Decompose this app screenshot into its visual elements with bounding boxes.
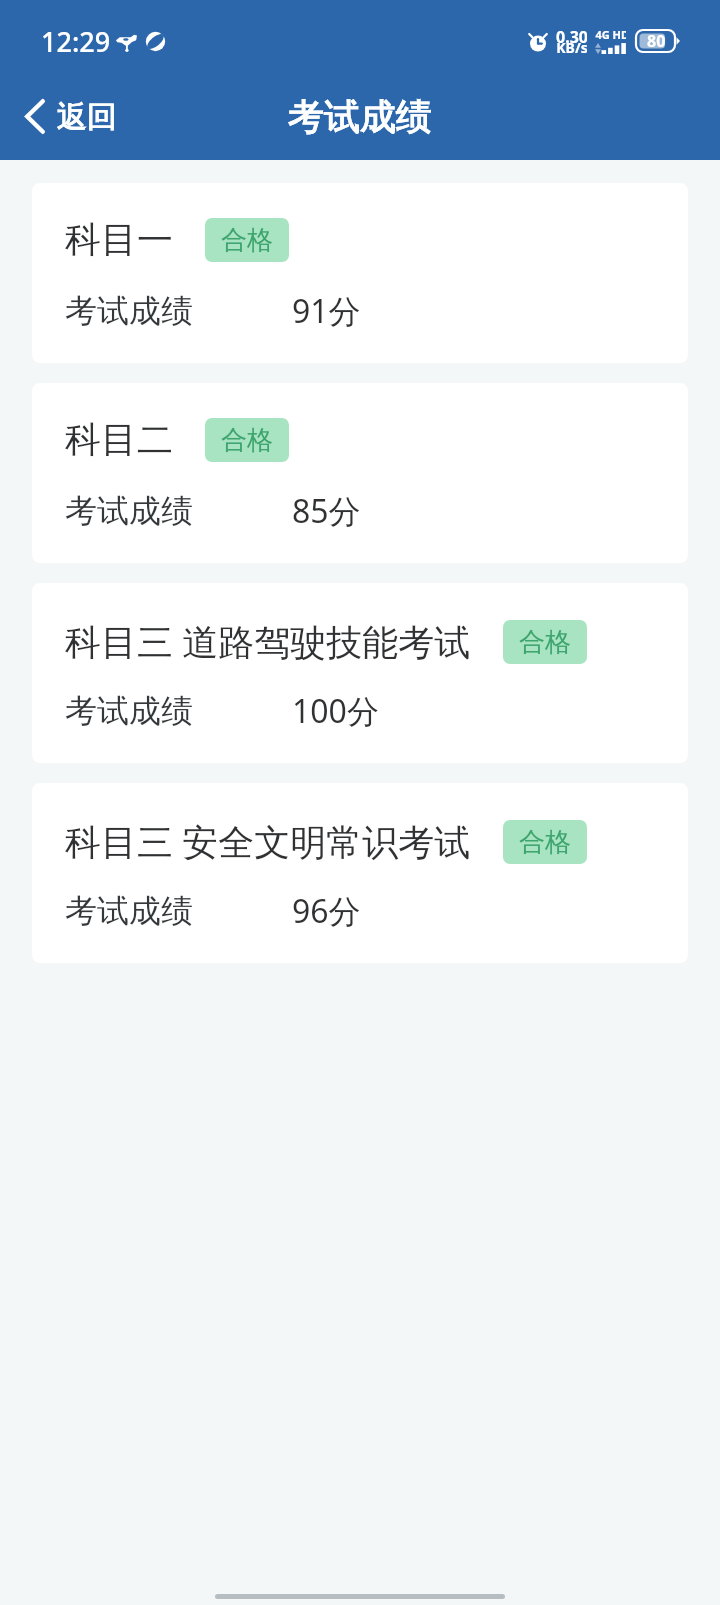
button[interactable]: 科目一: [32, 183, 688, 363]
staticText: 考试成绩: [65, 291, 193, 331]
staticText: 考试成绩: [65, 891, 193, 931]
staticText: 96分: [292, 889, 361, 933]
staticText: 合格: [221, 424, 273, 457]
staticText: 科目二: [65, 417, 173, 462]
staticText: 科目三 安全文明常识考试: [65, 817, 471, 866]
staticText: KB/s: [556, 38, 587, 57]
staticText: 返回: [57, 98, 117, 136]
button[interactable]: 科目三 道路驾驶技能考试: [32, 583, 688, 763]
staticText: 12:29: [41, 23, 111, 60]
staticText: 80: [647, 30, 666, 52]
button[interactable]: Back: [0, 87, 133, 145]
staticText: 科目三 道路驾驶技能考试: [65, 617, 471, 666]
button[interactable]: 科目三 安全文明常识考试: [32, 783, 688, 963]
staticText: 91分: [292, 289, 361, 333]
staticText: 100分: [292, 689, 379, 733]
staticText: 考试成绩: [65, 491, 193, 531]
other: Back: [25, 99, 45, 134]
staticText: 4G HD: [595, 27, 626, 42]
staticText: 考试成绩: [288, 94, 432, 139]
staticText: 考试成绩: [65, 691, 193, 731]
staticText: 0.30: [556, 26, 587, 48]
staticText: 科目一: [65, 217, 173, 262]
staticText: 85分: [292, 489, 361, 533]
staticText: 合格: [519, 826, 571, 859]
staticText: 考试成绩: [288, 94, 432, 139]
staticText: 合格: [221, 224, 273, 257]
staticText: 合格: [519, 626, 571, 659]
staticText: 返回: [57, 98, 117, 136]
button[interactable]: 科目二: [32, 383, 688, 563]
